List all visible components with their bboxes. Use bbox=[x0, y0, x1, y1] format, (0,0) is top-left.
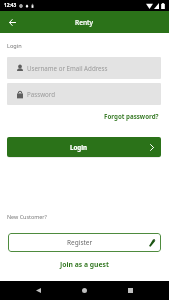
staticText: Login bbox=[70, 143, 88, 151]
button[interactable]: Home bbox=[77, 283, 91, 297]
button[interactable]: Username or Email Address bbox=[7, 57, 161, 79]
staticText: Renty bbox=[75, 18, 94, 27]
staticText: Username or Email Address bbox=[27, 64, 108, 72]
button[interactable]: Password bbox=[7, 83, 161, 105]
button[interactable]: Back bbox=[4, 14, 20, 30]
staticText: 12:43 bbox=[4, 2, 17, 9]
staticText: Join as a guest bbox=[60, 260, 109, 269]
staticText: New Customer? bbox=[7, 213, 47, 220]
button[interactable]: Recents bbox=[123, 283, 137, 297]
button[interactable]: Forgot password? bbox=[104, 112, 159, 120]
button[interactable]: Join as a guest bbox=[60, 260, 109, 269]
staticText: Register bbox=[67, 238, 93, 247]
staticText: Password bbox=[27, 90, 55, 98]
button[interactable]: Register bbox=[8, 233, 161, 252]
staticText: Login bbox=[7, 42, 22, 50]
staticText: Forgot password? bbox=[104, 112, 159, 120]
button[interactable]: Login bbox=[7, 137, 161, 157]
button[interactable]: Back bbox=[31, 283, 45, 297]
